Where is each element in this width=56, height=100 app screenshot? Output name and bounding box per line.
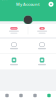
staticText: My Account xyxy=(16,2,40,7)
staticText: 9:41 xyxy=(2,0,9,1)
button[interactable]: Support xyxy=(0,39,28,53)
button[interactable]: Settings xyxy=(48,2,53,7)
button[interactable]: Statements xyxy=(28,39,56,53)
button[interactable]: 1,250 pts xyxy=(0,24,28,37)
staticText: Gold xyxy=(41,27,44,29)
button[interactable]: Account xyxy=(42,91,56,100)
staticText: 1,250 pts xyxy=(10,27,17,29)
button[interactable]: Activity xyxy=(28,91,42,100)
button[interactable]: Cards xyxy=(14,91,28,100)
button[interactable]: Home xyxy=(0,91,14,100)
button[interactable]: Gold xyxy=(28,24,56,37)
button[interactable]: Cards xyxy=(0,53,28,69)
button[interactable]: Offers xyxy=(28,53,56,69)
